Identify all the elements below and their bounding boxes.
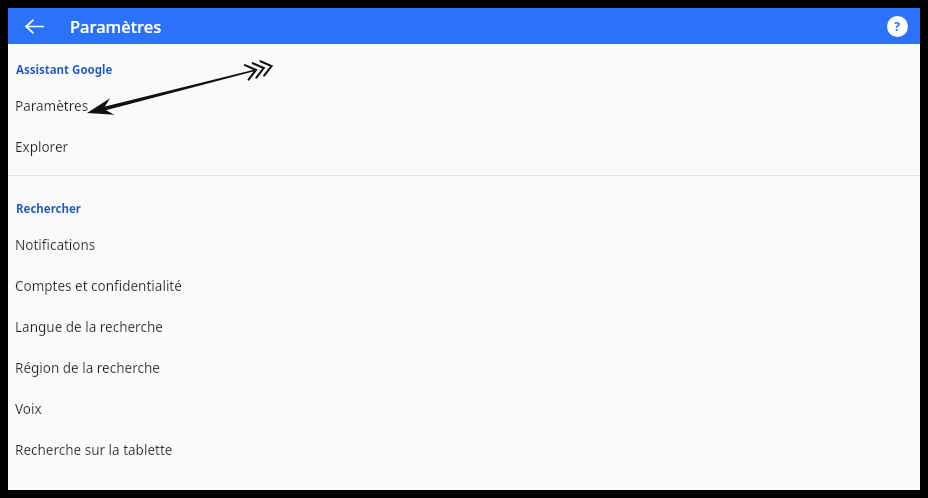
- button[interactable]: Recherche sur la tablette: [8, 429, 920, 470]
- staticText: Notifications: [15, 236, 96, 254]
- button[interactable]: Notifications: [8, 224, 920, 265]
- staticText: Paramètres: [15, 97, 89, 115]
- button[interactable]: Help: [882, 11, 912, 41]
- button[interactable]: Paramètres: [8, 85, 920, 126]
- staticText: Rechercher: [16, 201, 82, 217]
- button[interactable]: Langue de la recherche: [8, 306, 920, 347]
- staticText: ?: [894, 17, 901, 35]
- staticText: Paramètres: [70, 15, 162, 37]
- staticText: Voix: [15, 400, 42, 418]
- button[interactable]: Voix: [8, 388, 920, 429]
- staticText: Recherche sur la tablette: [15, 441, 173, 459]
- staticText: Comptes et confidentialité: [15, 277, 182, 295]
- staticText: Région de la recherche: [15, 359, 160, 377]
- button[interactable]: Explorer: [8, 126, 920, 167]
- button[interactable]: Back: [19, 11, 49, 41]
- button[interactable]: Comptes et confidentialité: [8, 265, 920, 306]
- staticText: Assistant Google: [16, 62, 113, 78]
- button[interactable]: Région de la recherche: [8, 347, 920, 388]
- staticText: Explorer: [15, 138, 69, 156]
- staticText: Langue de la recherche: [15, 318, 163, 336]
